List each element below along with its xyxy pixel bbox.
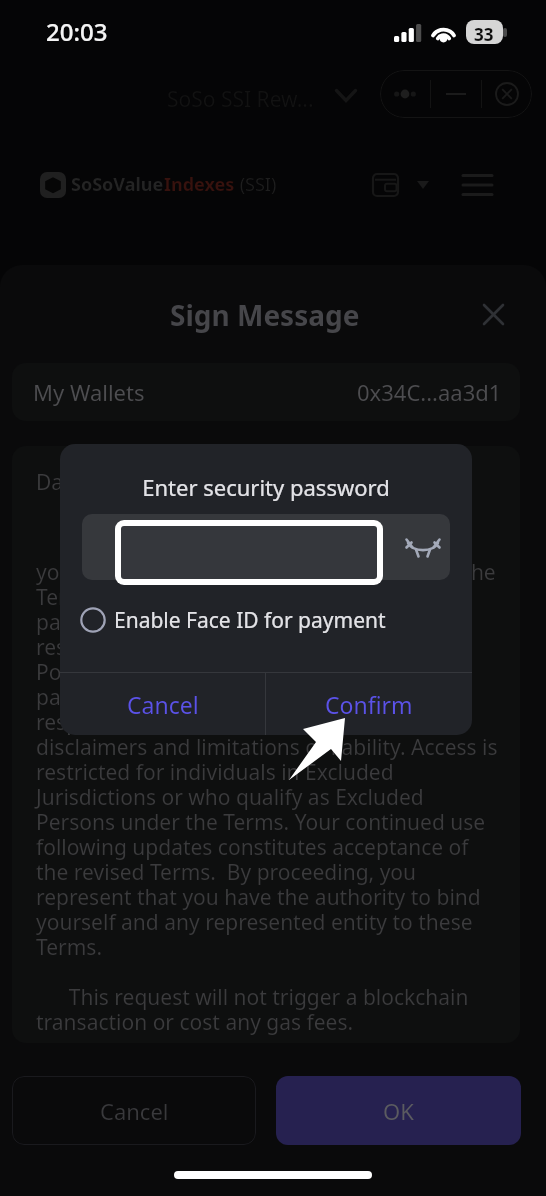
button[interactable]: Menu <box>456 164 498 206</box>
button[interactable]: Cancel <box>12 1076 256 1145</box>
staticText: 0x34C...aa3d1 <box>357 377 502 407</box>
button[interactable]: Close browser <box>482 70 532 118</box>
staticText: OK <box>383 1096 414 1126</box>
button[interactable]: Confirm <box>266 673 472 735</box>
staticText: Cancel <box>127 689 199 720</box>
staticText: (SSI) <box>235 172 277 197</box>
staticText: transaction or cost any gas fees. <box>36 1008 354 1037</box>
staticText: Sign Message <box>170 296 360 334</box>
staticText: responsibilities, together with <box>36 708 330 737</box>
staticText: Policy explains your choices and <box>36 658 352 687</box>
staticText: Enter security password <box>60 472 472 502</box>
staticText: 33 <box>474 23 494 46</box>
staticText: SoSoValue <box>71 172 164 197</box>
button[interactable]: Show password <box>403 527 443 567</box>
staticText: Terms. <box>36 933 103 962</box>
staticText: particulars of how information is <box>36 608 358 637</box>
button[interactable]: OK <box>276 1076 521 1145</box>
staticText: Indexes <box>164 172 235 197</box>
staticText: Cancel <box>100 1096 169 1126</box>
staticText: 20:03 <box>46 15 108 48</box>
button[interactable]: Wallet <box>364 164 406 206</box>
staticText: Data to sign <box>36 468 156 497</box>
staticText: parties involved. Please review <box>36 683 337 712</box>
staticText: the revised Terms. By proceeding, you <box>36 858 417 887</box>
staticText: you agree to be bound by these Terms and… <box>36 558 496 587</box>
staticText: Jurisdictions or who qualify as Excluded <box>36 783 424 812</box>
staticText: represent that you have the authority to… <box>36 883 481 912</box>
staticText: Enable Face ID for payment <box>114 606 386 635</box>
staticText: disclaimers and limitations of liability… <box>36 733 498 762</box>
button[interactable]: Close <box>473 294 513 334</box>
button[interactable]: My Wallets <box>12 363 520 421</box>
staticText: My Wallets <box>33 377 145 407</box>
staticText: restrictions, waivers and other <box>36 633 336 662</box>
staticText: yourself and any represented entity to t… <box>36 908 473 937</box>
staticText: This request will not trigger a blockcha… <box>36 983 469 1012</box>
staticText: following updates constitutes acceptance… <box>36 833 469 862</box>
staticText: Terms of Service and the Privacy <box>36 583 354 612</box>
staticText: SoSo SSI Rew... <box>167 85 314 114</box>
button[interactable]: Cancel <box>60 673 265 735</box>
staticText: restricted for individuals in Excluded <box>36 758 394 787</box>
button[interactable]: More <box>380 70 430 118</box>
staticText: Confirm <box>325 689 413 720</box>
staticText: Persons under the Terms. Your continued … <box>36 808 486 837</box>
button[interactable]: Enable Face ID for payment <box>80 600 386 640</box>
button[interactable]: Minimize <box>431 70 481 118</box>
